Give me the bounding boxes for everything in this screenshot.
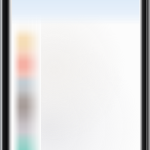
button[interactable]: Top app bar xyxy=(0,0,150,25)
button[interactable]: List item 4 xyxy=(0,96,150,118)
button[interactable]: List item 2 xyxy=(0,52,150,74)
button[interactable]: List item 5 xyxy=(0,130,150,150)
button[interactable]: List item 1 xyxy=(0,30,150,52)
button[interactable]: List item 3 xyxy=(0,74,150,96)
